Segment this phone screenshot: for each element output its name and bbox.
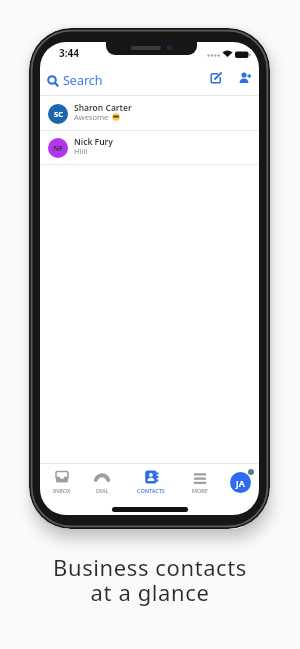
staticText: NF — [53, 143, 64, 153]
staticText: Business contacts — [0, 552, 300, 582]
button[interactable]: CONTACTS — [129, 469, 173, 499]
button[interactable]: MORE — [178, 469, 222, 499]
button[interactable] — [239, 72, 251, 84]
staticText: INBOX — [53, 487, 71, 494]
button[interactable]: INBOX — [40, 469, 84, 499]
staticText: Awesome — [74, 112, 109, 122]
staticText: 3:44 — [59, 46, 79, 60]
staticText: SC — [54, 109, 63, 119]
staticText: DIAL — [96, 487, 109, 494]
staticText: Sharon Carter — [74, 102, 132, 114]
button[interactable] — [210, 72, 222, 84]
button[interactable]: Search — [47, 72, 147, 90]
button[interactable]: DIAL — [80, 469, 124, 499]
staticText: MORE — [192, 487, 208, 494]
button[interactable]: JA — [230, 472, 251, 493]
staticText: Search — [63, 72, 103, 89]
button[interactable]: NF — [40, 131, 259, 164]
staticText: Nick Fury — [74, 136, 113, 148]
staticText: JA — [236, 477, 245, 489]
staticText: at a glance — [0, 577, 300, 607]
staticText: Hiiii — [74, 146, 88, 156]
button[interactable]: SC — [40, 97, 259, 130]
staticText: CONTACTS — [137, 487, 165, 494]
